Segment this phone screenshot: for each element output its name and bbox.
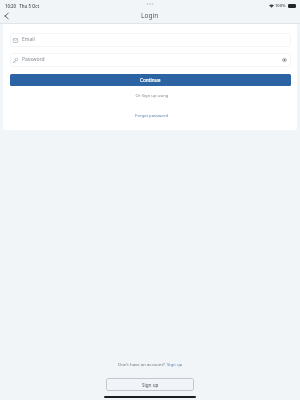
- button[interactable]: Continue: [10, 74, 291, 86]
- staticText: Continue: [140, 77, 161, 83]
- button[interactable]: Sign up: [106, 378, 194, 391]
- staticText: 100%: [275, 3, 286, 9]
- button[interactable]: Email: [10, 33, 291, 47]
- staticText: Password: [22, 56, 45, 63]
- button[interactable]: Back: [1, 10, 12, 21]
- button[interactable]: Forgot password: [135, 113, 169, 119]
- staticText: Or Sign up using: [5, 93, 297, 99]
- button[interactable]: Sign up: [167, 361, 183, 367]
- staticText: 10:20 Thu 5 Oct: [5, 3, 40, 9]
- button[interactable]: Password: [10, 53, 291, 67]
- staticText: Don't have an account?: [118, 361, 165, 367]
- staticText: Email: [22, 36, 35, 43]
- staticText: Login: [141, 11, 159, 20]
- staticText: Sign up: [142, 382, 159, 388]
- button[interactable]: Show password: [281, 57, 287, 63]
